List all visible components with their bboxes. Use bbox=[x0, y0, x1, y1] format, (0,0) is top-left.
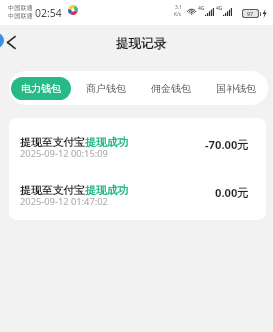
staticText: 2025-09-12 01:47:02 bbox=[20, 195, 108, 208]
staticText: 3.1 bbox=[175, 4, 182, 11]
staticText: 中国联通 bbox=[8, 12, 33, 20]
staticText: K/s bbox=[174, 11, 182, 18]
staticText: 4G bbox=[216, 5, 223, 12]
button[interactable]: 提现至支付宝 bbox=[9, 184, 266, 208]
staticText: 提现记录 bbox=[116, 36, 166, 52]
staticText: 提现至支付宝 bbox=[20, 184, 85, 198]
button[interactable]: 商户钱包 bbox=[75, 77, 136, 100]
staticText: 4G bbox=[198, 5, 205, 12]
staticText: 0.00元 bbox=[215, 185, 249, 200]
button[interactable]: 国补钱包 bbox=[205, 77, 266, 100]
staticText: 97 bbox=[247, 10, 254, 17]
staticText: 提现成功 bbox=[85, 136, 129, 150]
staticText: 提现至支付宝 bbox=[20, 136, 85, 150]
staticText: 佣金钱包 bbox=[151, 82, 191, 95]
staticText: 国补钱包 bbox=[216, 82, 256, 95]
button[interactable]: 电力钱包 bbox=[11, 77, 71, 100]
button[interactable]: 提现至支付宝 bbox=[9, 136, 266, 160]
staticText: 提现成功 bbox=[85, 184, 129, 198]
button[interactable]: Back bbox=[0, 29, 24, 55]
staticText: -70.00元 bbox=[205, 137, 249, 152]
staticText: 02:54 bbox=[35, 6, 62, 20]
staticText: 2025-09-12 00:15:09 bbox=[20, 147, 108, 160]
button[interactable]: 佣金钱包 bbox=[140, 77, 201, 100]
staticText: 电力钱包 bbox=[21, 82, 61, 95]
staticText: 商户钱包 bbox=[86, 82, 126, 95]
staticText: 中国联通 bbox=[8, 4, 33, 12]
